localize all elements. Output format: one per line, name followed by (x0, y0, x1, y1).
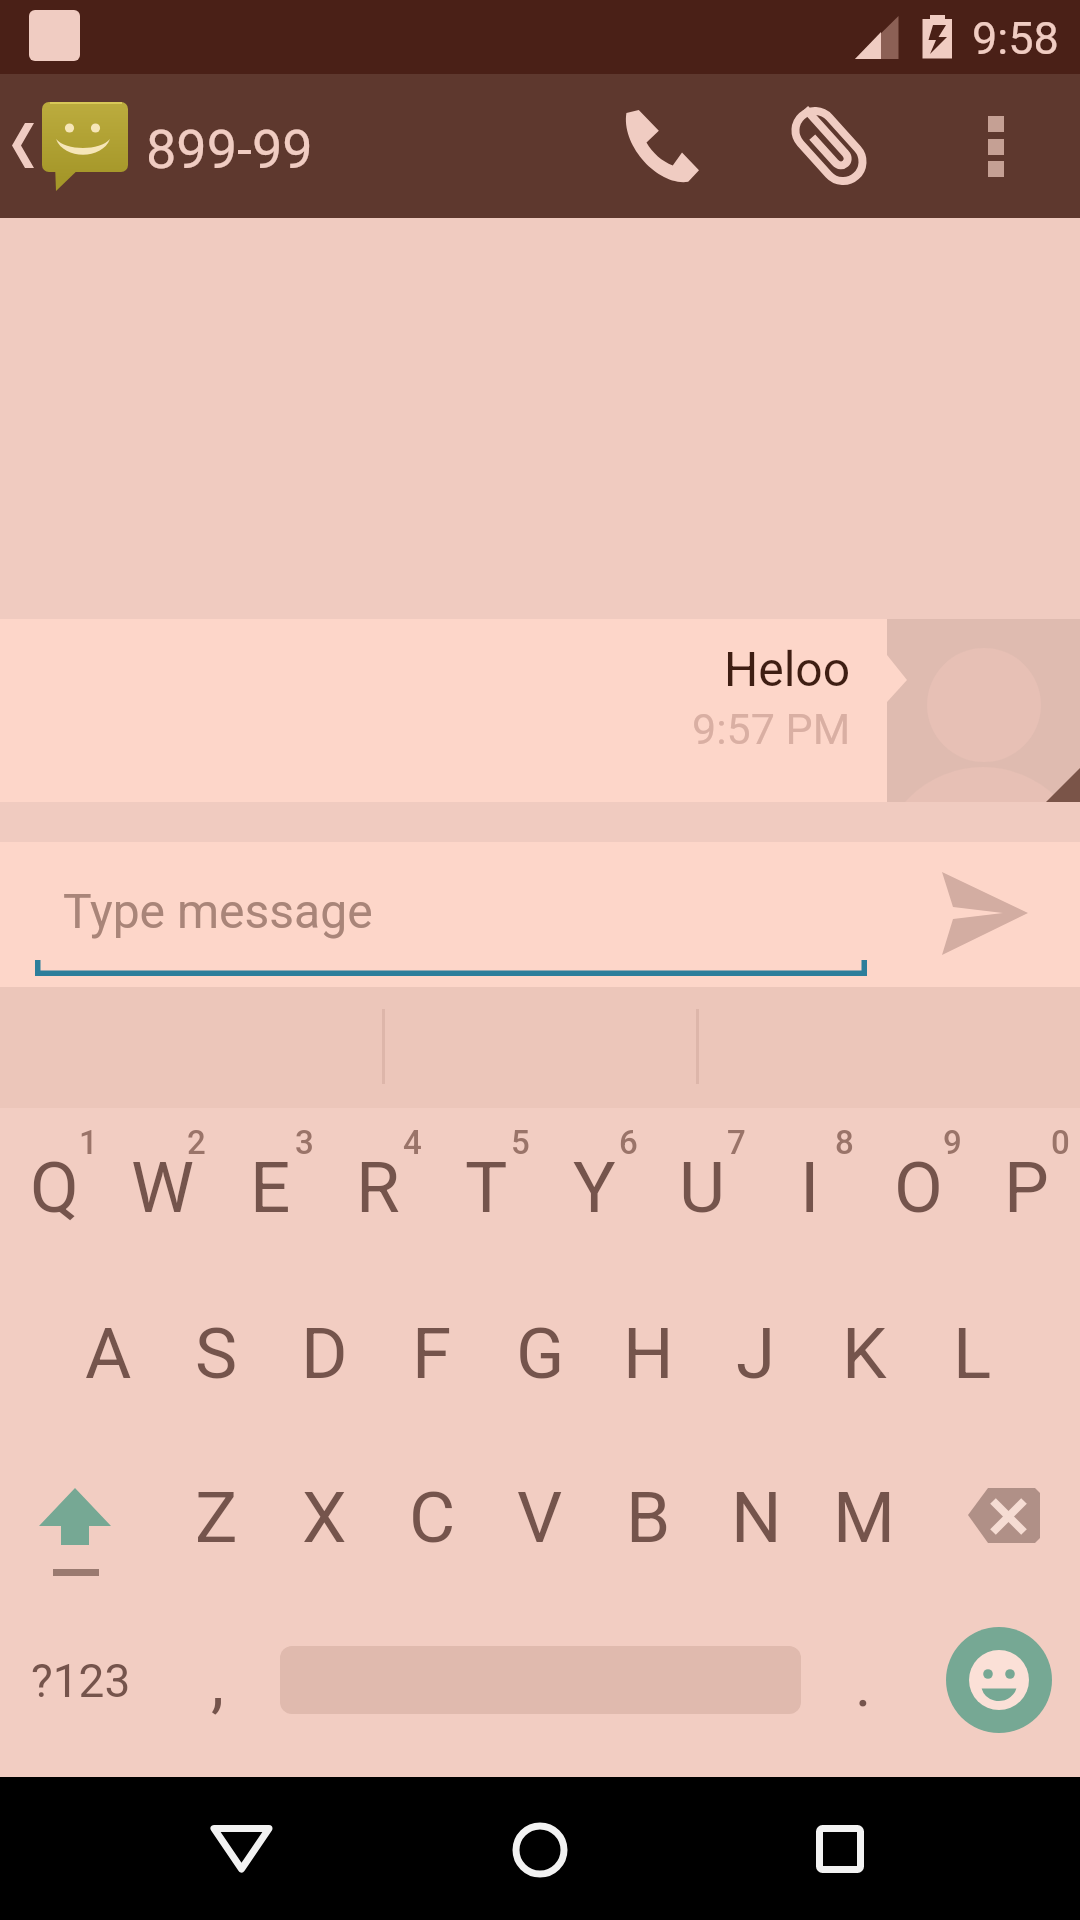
button[interactable]: N (702, 1435, 810, 1599)
staticText: Type message (63, 883, 373, 939)
staticText: W (131, 1146, 194, 1229)
staticText: S (195, 1312, 238, 1395)
button[interactable]: Backspace (940, 1460, 1080, 1624)
button[interactable]: Z (162, 1435, 270, 1599)
button[interactable]: G (486, 1271, 594, 1435)
button[interactable]: K (810, 1271, 918, 1435)
button[interactable]: T (432, 1108, 540, 1272)
button[interactable]: Call (600, 74, 720, 218)
staticText: G (516, 1312, 565, 1395)
staticText: . (855, 1648, 872, 1721)
staticText: 2 (187, 1123, 206, 1162)
button[interactable]: W (108, 1108, 216, 1272)
button[interactable]: C (378, 1435, 486, 1599)
button[interactable]: M (810, 1435, 918, 1599)
button[interactable]: Back (151, 1777, 331, 1920)
staticText: , (211, 1644, 224, 1721)
staticText: 1 (79, 1123, 98, 1162)
staticText: 9 (943, 1123, 962, 1162)
button[interactable]: Q (0, 1108, 108, 1272)
button[interactable]: R (324, 1108, 432, 1272)
staticText: X (302, 1476, 347, 1559)
staticText: 3 (295, 1123, 314, 1162)
staticText: E (250, 1146, 291, 1229)
button[interactable]: Recents (750, 1777, 930, 1920)
staticText: F (412, 1312, 452, 1395)
staticText: I (800, 1146, 820, 1229)
staticText: 6 (619, 1123, 638, 1162)
button[interactable]: More options (944, 74, 1048, 218)
staticText: M (833, 1476, 895, 1559)
button[interactable]: L (918, 1271, 1026, 1435)
staticText: Z (195, 1476, 238, 1559)
button[interactable]: . (808, 1600, 918, 1777)
button[interactable]: S (162, 1271, 270, 1435)
button[interactable]: V (486, 1435, 594, 1599)
button[interactable]: E (216, 1108, 324, 1272)
button[interactable]: Back (0, 74, 46, 218)
button[interactable]: U (648, 1108, 756, 1272)
staticText: 8 (835, 1123, 854, 1162)
staticText: ?123 (31, 1654, 131, 1708)
button[interactable]: A (54, 1271, 162, 1435)
staticText: 899-99 (146, 118, 313, 181)
staticText: D (301, 1312, 348, 1395)
staticText: R (356, 1146, 400, 1229)
staticText: T (465, 1146, 508, 1229)
button[interactable]: X (270, 1435, 378, 1599)
button[interactable]: J (702, 1271, 810, 1435)
staticText: 9:57 PM (692, 704, 851, 754)
button[interactable]: D (270, 1271, 378, 1435)
staticText: P (1004, 1146, 1049, 1229)
button[interactable]: F (378, 1271, 486, 1435)
button[interactable]: Attach (769, 74, 889, 218)
button[interactable]: Y (540, 1108, 648, 1272)
staticText: N (731, 1476, 782, 1559)
button[interactable]: B (594, 1435, 702, 1599)
staticText: Y (573, 1146, 616, 1229)
button[interactable]: P (972, 1108, 1080, 1272)
staticText: B (626, 1476, 671, 1559)
staticText: 7 (727, 1123, 746, 1162)
staticText: Q (30, 1146, 79, 1229)
staticText: K (842, 1312, 887, 1395)
staticText: H (623, 1312, 674, 1395)
button[interactable]: ?123 (0, 1600, 162, 1777)
staticText: A (85, 1312, 132, 1395)
staticText: 9:58 (972, 12, 1059, 65)
staticText: 4 (403, 1123, 422, 1162)
staticText: Heloo (724, 641, 851, 697)
staticText: J (736, 1312, 776, 1395)
staticText: L (953, 1312, 992, 1395)
button[interactable]: Send (910, 842, 1060, 987)
button[interactable]: Emoji (923, 1604, 1075, 1756)
staticText: O (894, 1146, 943, 1229)
button[interactable]: H (594, 1271, 702, 1435)
staticText: V (517, 1476, 563, 1559)
button[interactable]: Shift (0, 1460, 150, 1624)
button[interactable]: Home (450, 1777, 630, 1920)
staticText: 0 (1051, 1123, 1070, 1162)
button[interactable]: O (864, 1108, 972, 1272)
staticText: 5 (511, 1123, 530, 1162)
staticText: U (679, 1146, 726, 1229)
button[interactable]: , (162, 1600, 272, 1777)
button[interactable]: I (756, 1108, 864, 1272)
staticText: C (409, 1476, 456, 1559)
